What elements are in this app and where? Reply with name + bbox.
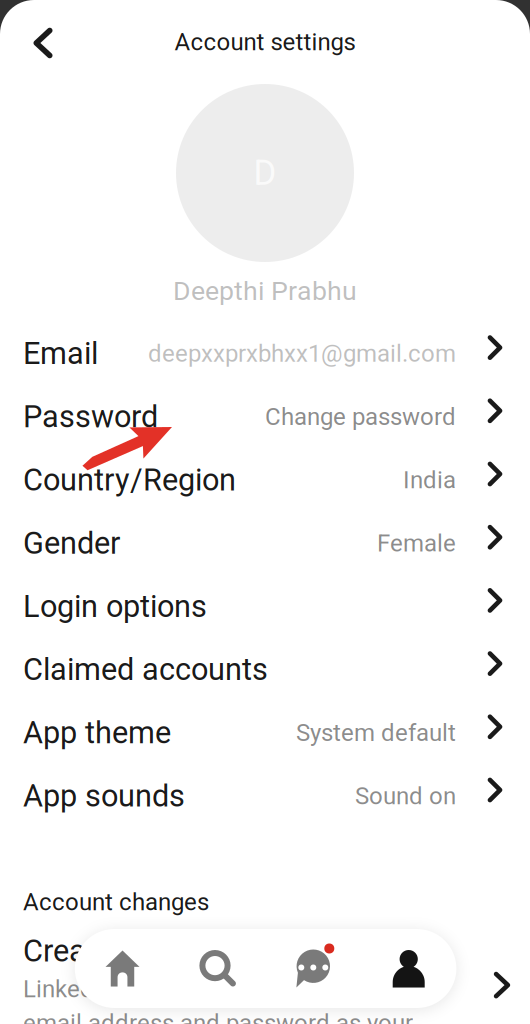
staticText: Account settings — [174, 28, 355, 56]
button[interactable]: Country/Region — [0, 448, 530, 512]
staticText: Password — [23, 399, 158, 435]
button[interactable]: Messaging — [266, 929, 361, 1008]
button[interactable]: App sounds — [0, 764, 530, 828]
staticText: deepxxprxbhxx1@gmail.com — [148, 339, 456, 368]
button[interactable]: Profile — [361, 929, 456, 1008]
button[interactable]: Claimed accounts — [0, 638, 530, 701]
staticText: Create a new account — [23, 933, 319, 969]
button[interactable]: Email — [0, 322, 530, 385]
staticText: Sound on — [355, 782, 456, 810]
staticText: Deepthi Prabhu — [173, 275, 357, 307]
staticText: Female — [377, 529, 456, 557]
button[interactable]: Gender — [0, 512, 530, 575]
button[interactable]: Back — [16, 13, 70, 73]
staticText: India — [403, 466, 456, 494]
staticText: Country/Region — [23, 462, 236, 498]
staticText: Gender — [23, 525, 120, 561]
staticText: Change password — [265, 403, 456, 431]
staticText: email address and password as your — [23, 1009, 413, 1024]
button[interactable]: Search — [170, 929, 266, 1008]
staticText: App sounds — [23, 778, 185, 814]
button[interactable]: Login options — [0, 575, 530, 638]
staticText: App theme — [23, 715, 171, 751]
button[interactable]: Home — [75, 929, 170, 1008]
staticText: Email — [23, 336, 98, 371]
staticText: Linked accounts share the same — [23, 975, 369, 1003]
staticText: System default — [296, 719, 456, 747]
button[interactable]: Create a new account — [0, 933, 530, 1024]
button[interactable]: Password — [0, 385, 530, 448]
button[interactable]: App theme — [0, 701, 530, 764]
staticText: Claimed accounts — [23, 652, 268, 687]
staticText: Login options — [23, 588, 207, 624]
staticText: Account changes — [23, 888, 209, 916]
staticText: D — [253, 153, 276, 193]
